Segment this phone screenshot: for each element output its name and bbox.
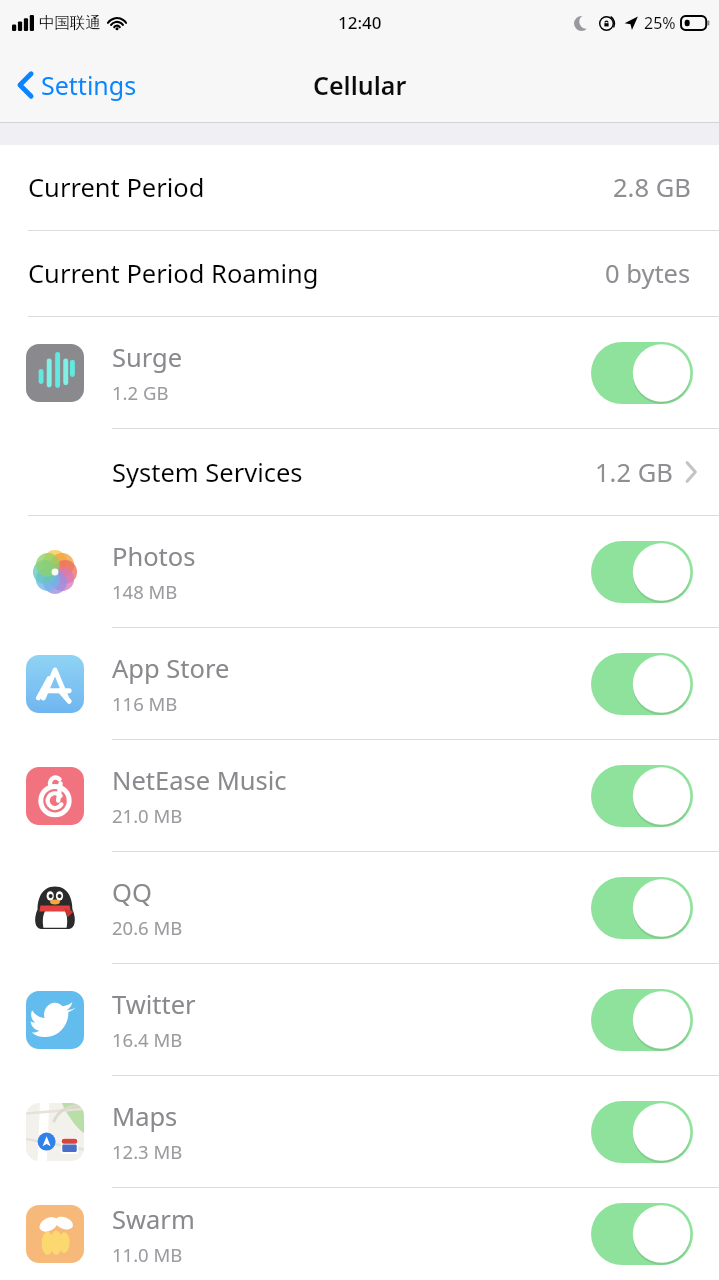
- staticText: Current Period Roaming: [28, 256, 319, 291]
- staticText: 1.2 GB: [595, 455, 673, 490]
- staticText: App Store: [112, 651, 230, 686]
- button[interactable]: QQ: [0, 852, 719, 963]
- staticText: 11.0 MB: [112, 1242, 183, 1267]
- button[interactable]: Cellular data toggle: [591, 989, 693, 1051]
- button[interactable]: Cellular data toggle: [591, 541, 693, 603]
- staticText: Twitter: [112, 987, 196, 1022]
- staticText: 25%: [644, 12, 676, 34]
- staticText: 2.8 GB: [613, 170, 691, 205]
- staticText: 116 MB: [112, 691, 178, 716]
- button[interactable]: Twitter: [0, 964, 719, 1075]
- button[interactable]: Cellular data toggle: [591, 653, 693, 715]
- button[interactable]: Cellular data toggle: [591, 1101, 693, 1163]
- button[interactable]: Cellular data toggle: [591, 342, 693, 404]
- button[interactable]: System Services: [0, 429, 719, 515]
- staticText: 12:40: [338, 11, 382, 34]
- button[interactable]: Cellular data toggle: [591, 765, 693, 827]
- staticText: Photos: [112, 539, 196, 574]
- staticText: 中国联通: [39, 13, 101, 33]
- staticText: NetEase Music: [112, 763, 287, 798]
- staticText: Cellular: [313, 68, 407, 102]
- button[interactable]: Current Period: [0, 145, 719, 230]
- button[interactable]: Maps: [0, 1076, 719, 1187]
- button[interactable]: NetEase Music: [0, 740, 719, 851]
- button[interactable]: Settings: [14, 62, 141, 108]
- staticText: QQ: [112, 875, 152, 910]
- button[interactable]: Cellular data toggle: [591, 1203, 693, 1265]
- staticText: 1.2 GB: [112, 380, 169, 405]
- staticText: System Services: [112, 455, 303, 490]
- staticText: 20.6 MB: [112, 915, 183, 940]
- button[interactable]: Swarm: [0, 1188, 719, 1280]
- staticText: 0 bytes: [605, 256, 691, 291]
- staticText: Surge: [112, 340, 183, 375]
- button[interactable]: Cellular data toggle: [591, 877, 693, 939]
- staticText: Settings: [41, 68, 137, 102]
- staticText: Maps: [112, 1099, 178, 1134]
- button[interactable]: Current Period Roaming: [0, 231, 719, 316]
- button[interactable]: App Store: [0, 628, 719, 739]
- staticText: Swarm: [112, 1202, 195, 1237]
- staticText: Current Period: [28, 170, 205, 205]
- button[interactable]: Surge: [0, 317, 719, 428]
- staticText: 21.0 MB: [112, 803, 183, 828]
- staticText: 16.4 MB: [112, 1027, 183, 1052]
- staticText: 148 MB: [112, 579, 178, 604]
- button[interactable]: Photos: [0, 516, 719, 627]
- staticText: 12.3 MB: [112, 1139, 183, 1164]
